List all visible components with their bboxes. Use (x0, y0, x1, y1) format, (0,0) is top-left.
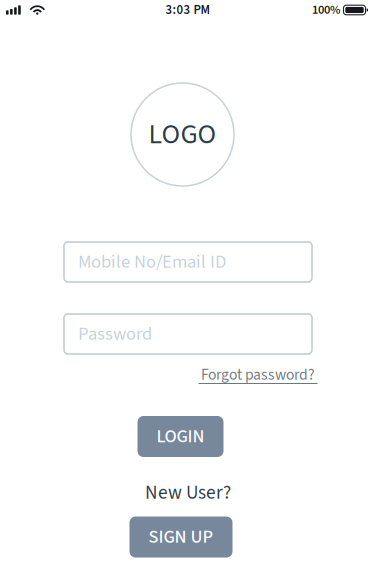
button[interactable]: SIGN UP (129, 516, 232, 557)
button[interactable]: Forgot password? (201, 366, 315, 384)
staticText: 3:03 PM (165, 1, 210, 19)
staticText: LOGO (148, 115, 216, 154)
button[interactable]: LOGIN (137, 416, 223, 457)
staticText: Forgot password? (201, 364, 315, 386)
staticText: Mobile No/Email ID (78, 249, 226, 275)
staticText: New User? (145, 479, 231, 506)
staticText: Password (78, 321, 152, 347)
staticText: SIGN UP (148, 524, 213, 550)
staticText: 100% (312, 1, 340, 19)
staticText: LOGIN (156, 423, 204, 449)
